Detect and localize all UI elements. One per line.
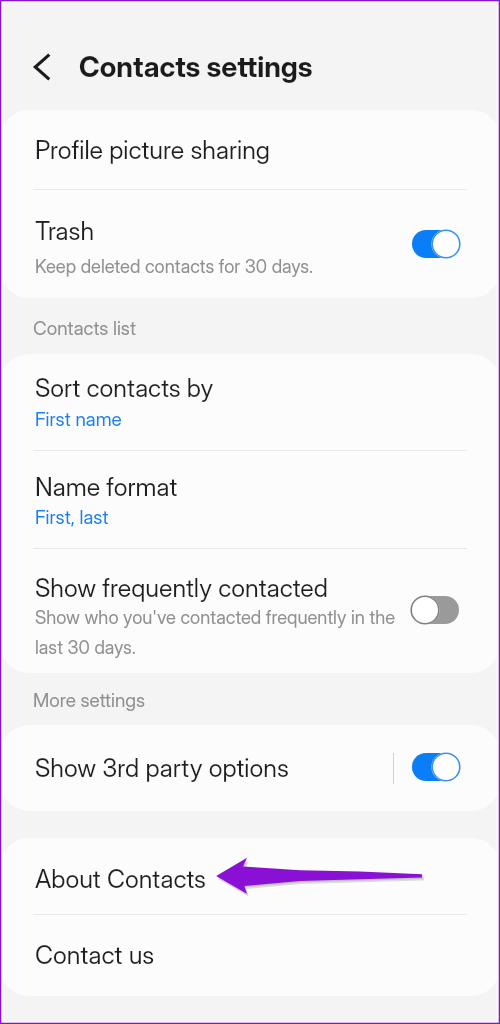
staticText: Contact us [35, 940, 155, 970]
staticText: Keep deleted contacts for 30 days. [35, 255, 314, 277]
button[interactable]: Show frequently contacted [0, 549, 500, 673]
staticText: Show who you've contacted frequently in … [35, 606, 396, 628]
staticText: Contacts list [33, 317, 136, 340]
button[interactable]: Name format [0, 451, 500, 548]
staticText: Sort contacts by [35, 373, 214, 403]
button[interactable]: Show frequently contacted switch, off [409, 594, 463, 628]
button[interactable]: Sort contacts by [0, 354, 500, 450]
button[interactable]: About Contacts [0, 838, 500, 914]
button[interactable]: Profile picture sharing [0, 110, 500, 189]
staticText: More settings [33, 689, 146, 712]
staticText: First, last [35, 506, 109, 529]
staticText: Show 3rd party options [35, 753, 289, 783]
staticText: Contacts settings [79, 49, 313, 83]
staticText: Profile picture sharing [35, 135, 270, 165]
button[interactable]: Trash [0, 190, 500, 298]
button[interactable]: Trash switch, on [410, 228, 464, 262]
staticText: last 30 days. [35, 636, 136, 658]
button[interactable]: Show 3rd party options switch, on [410, 751, 464, 785]
staticText: About Contacts [35, 864, 206, 894]
button[interactable]: Show 3rd party options [0, 725, 500, 811]
staticText: Name format [35, 472, 178, 502]
staticText: Trash [35, 216, 95, 246]
button[interactable]: Contact us [0, 915, 500, 996]
staticText: Show frequently contacted [35, 573, 328, 603]
staticText: First name [35, 408, 122, 431]
button[interactable]: Navigate up [16, 41, 68, 93]
